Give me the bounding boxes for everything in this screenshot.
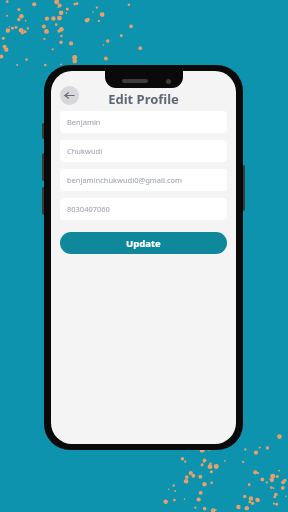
- staticText: Edit Profile: [108, 90, 179, 108]
- staticText: 8030407060: [67, 204, 110, 214]
- button[interactable]: Update: [60, 232, 227, 254]
- button[interactable]: Chukwudi: [60, 140, 227, 162]
- staticText: Benjamin: [67, 117, 101, 127]
- staticText: Update: [126, 237, 161, 250]
- button[interactable]: 8030407060: [60, 198, 227, 220]
- button[interactable]: Back: [60, 86, 79, 105]
- button[interactable]: Benjamin: [60, 111, 227, 133]
- staticText: benjaminchukwudi0@gmail.com: [67, 175, 183, 185]
- button[interactable]: benjaminchukwudi0@gmail.com: [60, 169, 227, 191]
- staticText: Chukwudi: [67, 146, 103, 156]
